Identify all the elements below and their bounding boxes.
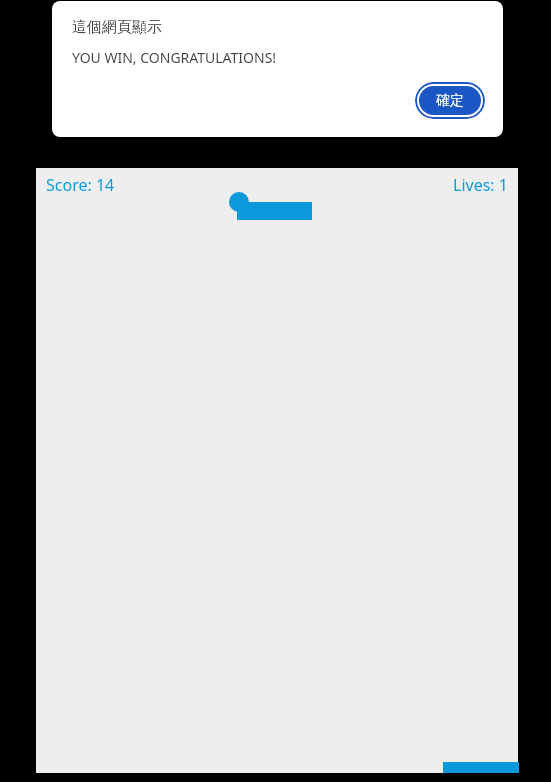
staticText: 這個網頁顯示 [72, 18, 162, 37]
staticText: 確定 [436, 92, 464, 110]
staticText: Score: 14 [46, 174, 115, 196]
staticText: Lives: 1 [453, 174, 508, 196]
button[interactable]: 確定 [415, 82, 485, 119]
staticText: YOU WIN, CONGRATULATIONS! [72, 48, 277, 67]
